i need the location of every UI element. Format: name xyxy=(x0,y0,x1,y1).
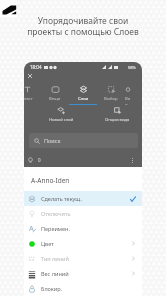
staticText: Вещи xyxy=(49,96,61,102)
button[interactable]: Вид xyxy=(125,80,131,105)
staticText: Новый слой xyxy=(49,117,74,123)
staticText: Цвет xyxy=(41,240,54,247)
staticText: 58% xyxy=(128,65,136,70)
button[interactable]: Слои xyxy=(69,80,97,105)
button[interactable]: Текст xyxy=(24,80,41,105)
staticText: Текст xyxy=(24,96,33,102)
staticText: Переимен. xyxy=(41,225,70,232)
staticText: Упорядочивайте свои проекты с помощью Сл… xyxy=(0,15,166,37)
staticText: Вид xyxy=(125,96,131,105)
button[interactable]: Вещи xyxy=(41,80,69,105)
staticText: Вес линий xyxy=(41,270,69,277)
button[interactable]: Поиск xyxy=(29,133,138,148)
staticText: Опции вида xyxy=(105,117,130,123)
staticText: Поиск xyxy=(44,137,61,144)
button[interactable]: Выбор xyxy=(97,80,125,105)
button[interactable]: Тип линий xyxy=(24,251,142,266)
button[interactable]: Concepts app logo xyxy=(0,0,17,17)
button[interactable]: Сделать текущ. xyxy=(24,191,142,206)
button[interactable]: Вес линий xyxy=(24,266,142,281)
staticText: A-Anno-Iden xyxy=(31,176,70,185)
button[interactable]: Close xyxy=(26,72,34,80)
staticText: Блокир. xyxy=(41,285,63,292)
staticText: Тип линий xyxy=(41,255,69,262)
button[interactable]: Переимен. xyxy=(24,221,142,236)
button[interactable]: Опции вида xyxy=(93,105,142,123)
staticText: 18:04 xyxy=(30,64,42,70)
staticText: Отключить xyxy=(41,210,71,217)
button[interactable]: Цвет xyxy=(24,236,142,251)
staticText: Выбор xyxy=(104,96,118,102)
staticText: Сделать текущ. xyxy=(41,195,82,202)
staticText: Слои xyxy=(78,96,89,102)
button[interactable]: Блокир. xyxy=(24,281,142,296)
staticText: 0 xyxy=(38,157,41,163)
button[interactable]: Отключить xyxy=(24,206,142,221)
button[interactable]: Новый слой xyxy=(35,105,87,123)
button[interactable]: More options xyxy=(129,157,136,164)
